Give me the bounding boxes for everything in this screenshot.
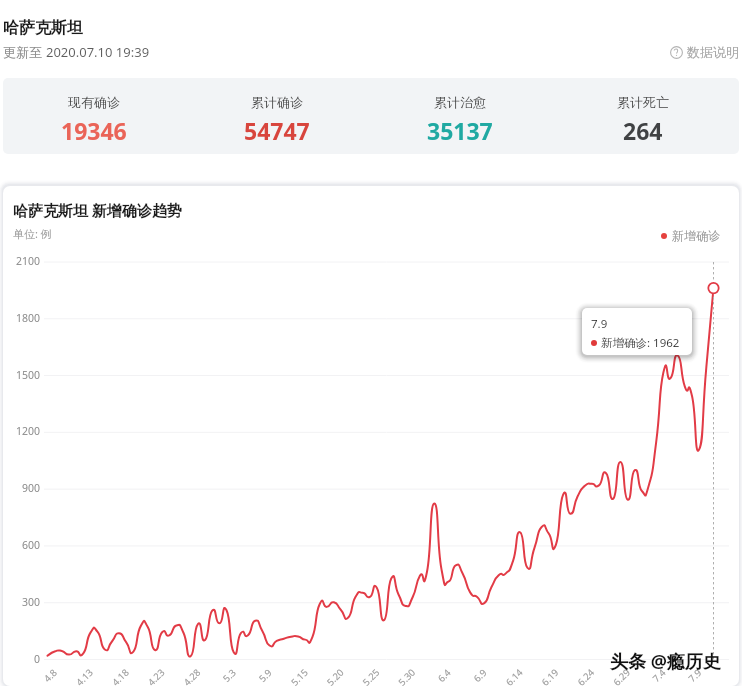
button[interactable]: 现有确诊 [3,78,185,154]
staticText: 264 [623,115,663,146]
staticText: 2020.07.10 19:39 [46,43,150,61]
staticText: 1500 [16,368,41,382]
staticText: 35137 [427,115,493,146]
staticText: 累计死亡 [617,94,669,110]
staticText: 哈萨克斯坦 新增确诊趋势 [13,200,182,220]
staticText: 19346 [61,115,127,146]
button[interactable]: 新增确诊 [661,228,720,243]
staticText: 新增确诊: 1962 [601,335,680,351]
button[interactable]: 累计治愈 [368,78,551,154]
staticText: 头条 @瘾历史 [610,649,721,674]
staticText: 哈萨克斯坦 [3,18,83,38]
staticText: 累计治愈 [434,94,486,110]
staticText: 900 [22,481,41,495]
staticText: 0 [34,652,41,666]
staticText: 更新至 [3,43,46,61]
staticText: 7.9 [591,316,608,332]
staticText: 单位: 例 [13,226,52,241]
staticText: 现有确诊 [68,94,120,110]
staticText: 新增确诊 [672,228,720,243]
button[interactable]: 数据说明 [670,44,739,60]
staticText: 1200 [16,424,41,438]
staticText: 2100 [16,254,41,268]
button[interactable]: 累计确诊 [185,78,368,154]
staticText: 1800 [16,311,41,325]
staticText: 300 [22,595,41,609]
staticText: 54747 [244,115,310,146]
button[interactable]: 累计死亡 [551,78,734,154]
staticText: 累计确诊 [251,94,303,110]
staticText: 数据说明 [687,44,739,60]
staticText: 600 [22,538,41,552]
